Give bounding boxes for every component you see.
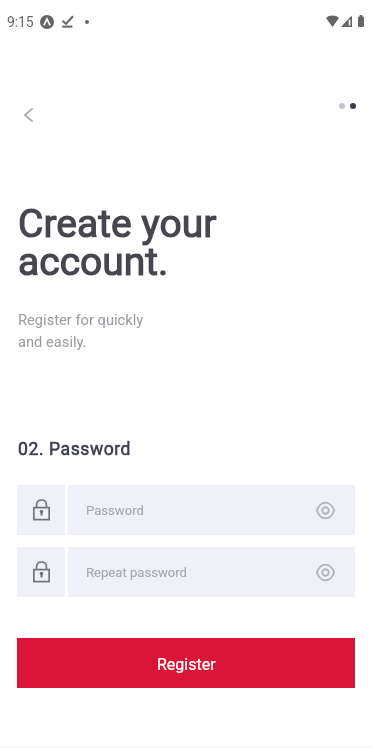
button[interactable]: Show password: [304, 485, 355, 535]
staticText: Register: [157, 655, 216, 674]
staticText: 02. Password: [18, 439, 132, 460]
button[interactable]: Register: [17, 638, 355, 688]
button[interactable]: Back: [10, 96, 46, 132]
staticText: Password: [86, 503, 144, 518]
button[interactable]: Repeat password: [17, 547, 355, 597]
staticText: Register for quickly and easily.: [18, 311, 144, 351]
staticText: Create your account.: [18, 201, 217, 285]
button[interactable]: Password: [17, 485, 355, 535]
staticText: Repeat password: [86, 565, 187, 580]
staticText: 9:15: [7, 14, 34, 30]
button[interactable]: Show password: [304, 547, 355, 597]
